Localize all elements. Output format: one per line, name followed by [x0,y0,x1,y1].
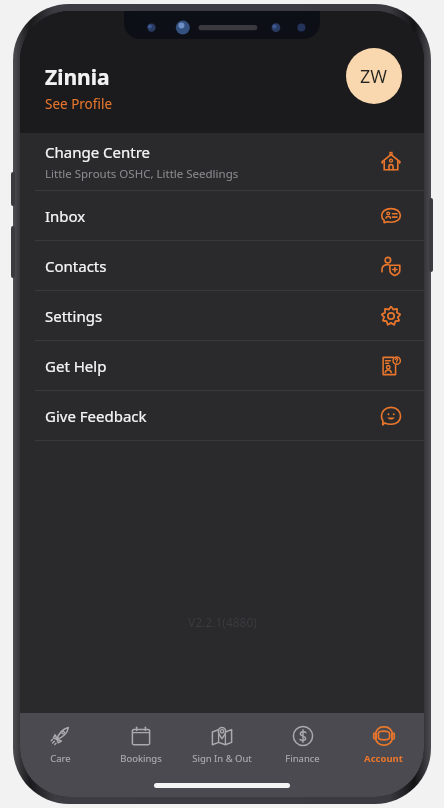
other: Contacts [380,255,402,277]
other: Care [48,724,72,748]
button[interactable]: Zinnia [45,63,121,113]
other: Inbox [380,205,402,227]
other: Bookings [129,724,153,748]
other: Give Feedback [380,405,402,427]
staticText: V2.2.1(4880) [188,614,257,630]
staticText: Inbox [45,206,86,226]
other: Settings [380,305,402,327]
staticText: ZW [360,64,388,89]
staticText: Give Feedback [45,406,147,426]
staticText: Finance [285,752,320,765]
button[interactable]: Get Help [20,341,424,390]
button[interactable]: Account [343,722,424,767]
button[interactable]: Finance [262,722,343,767]
button[interactable]: Profile avatar ZW [346,48,402,104]
staticText: Sign In & Out [192,752,252,765]
button[interactable]: Bookings [100,722,181,767]
button[interactable]: Contacts [20,241,424,290]
button[interactable]: Sign In and Out [181,722,262,767]
staticText: Account [364,752,403,765]
staticText: Get Help [45,356,107,376]
button[interactable]: Give Feedback [20,391,424,440]
staticText: Contacts [45,256,107,276]
button[interactable]: Inbox [20,191,424,240]
staticText: Bookings [120,752,162,765]
staticText: Change Centre [45,142,151,162]
button[interactable]: Change Centre [20,133,424,190]
staticText: Care [50,752,71,765]
staticText: See Profile [45,95,113,113]
other: Get Help [380,355,402,377]
other: Centre [380,151,402,173]
staticText: Zinnia [45,63,110,92]
staticText: Little Sprouts OSHC, Little Seedlings [45,166,239,182]
button[interactable]: Settings [20,291,424,340]
other: Finance [291,724,315,748]
button[interactable]: Care [20,722,100,767]
staticText: Settings [45,306,103,326]
other: Account [372,724,396,748]
other: Sign In and Out [210,724,234,748]
